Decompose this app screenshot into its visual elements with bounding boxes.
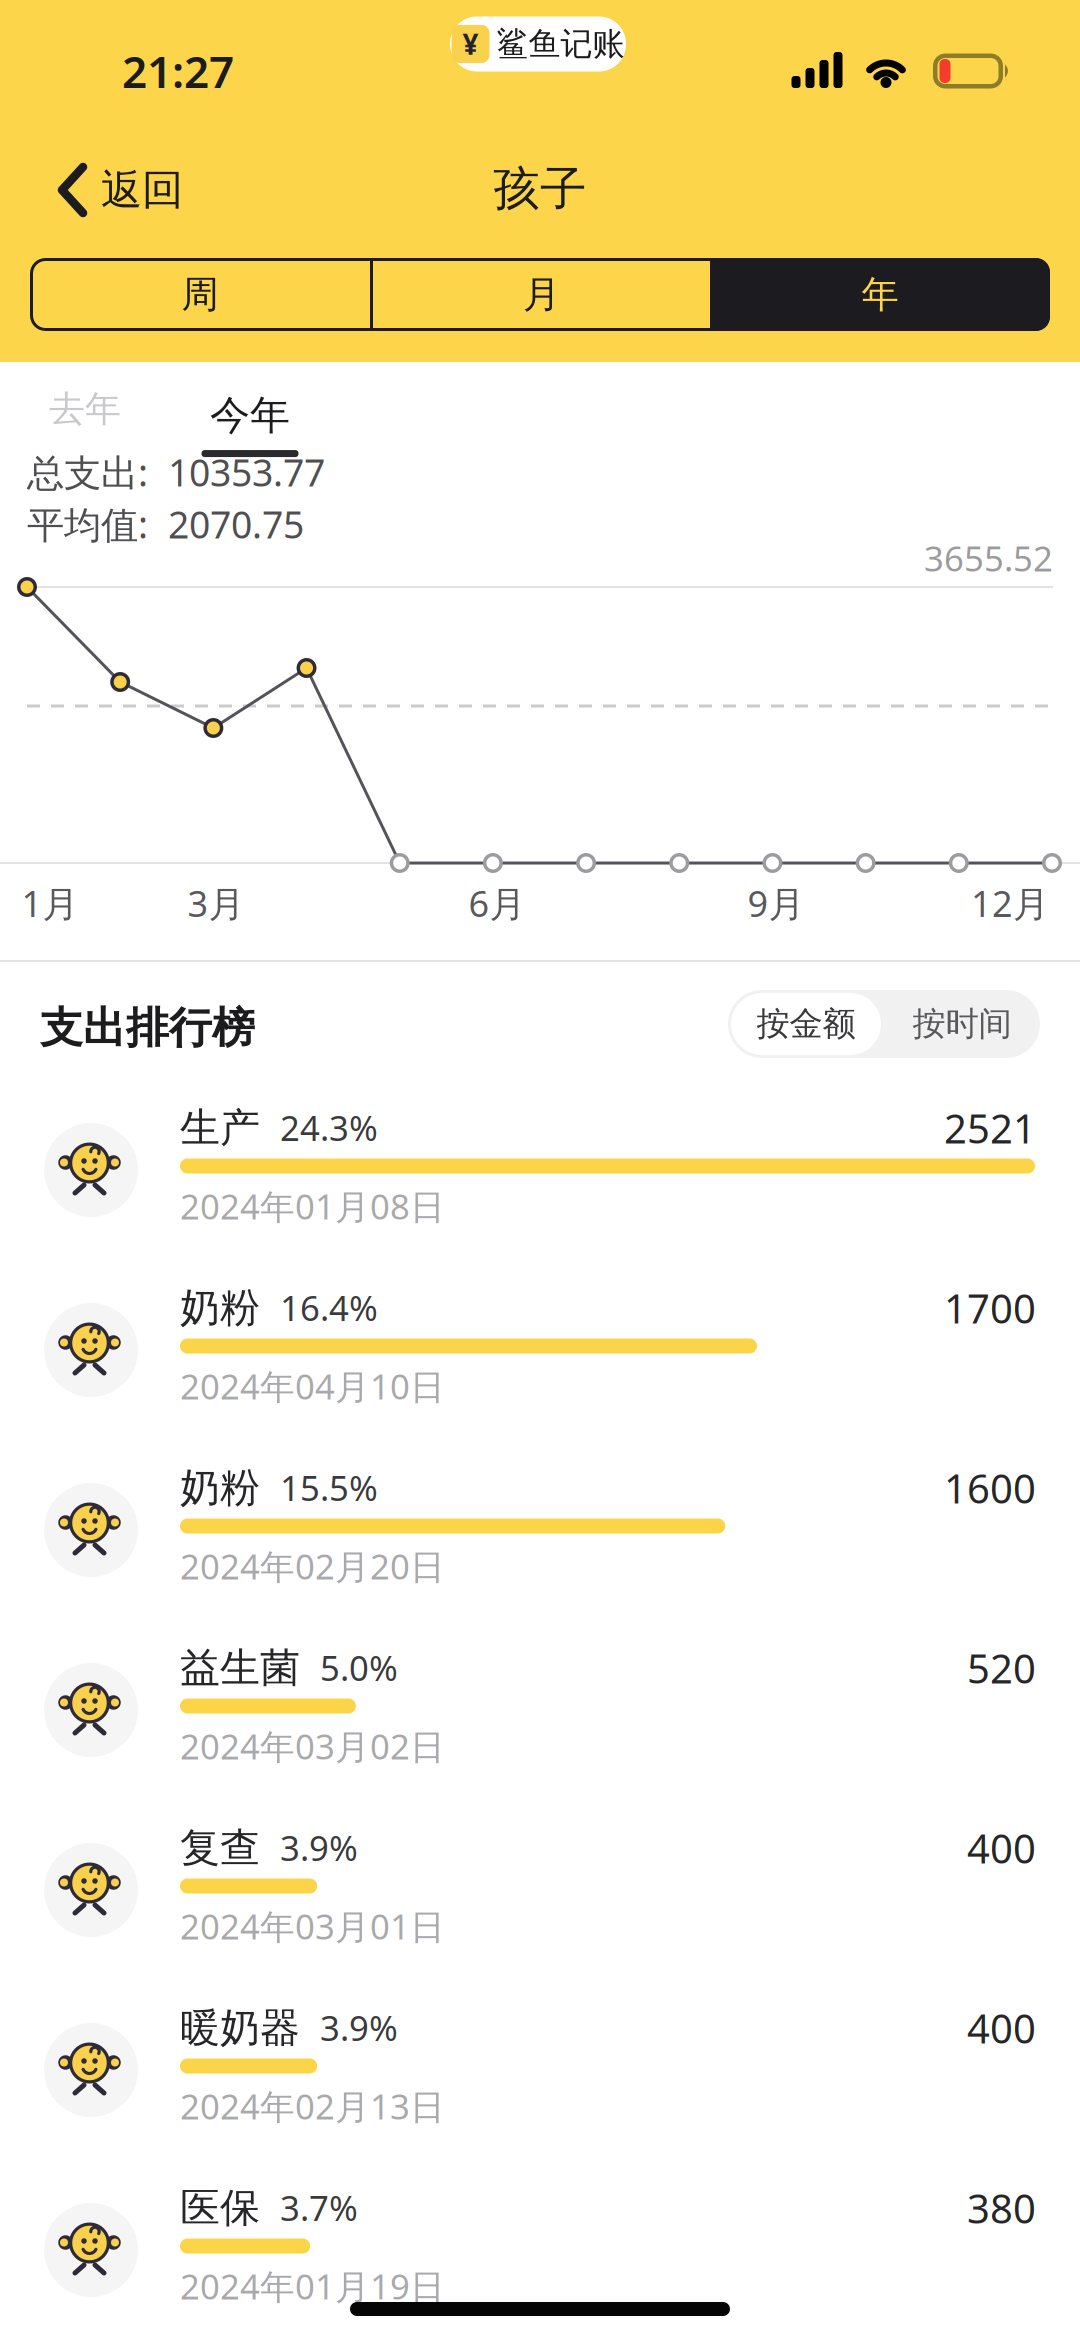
staticText: 380 — [967, 2181, 1036, 2234]
staticText: 2024年01月19日 — [180, 2263, 445, 2309]
button[interactable]: 年 — [710, 258, 1050, 331]
staticText: 支出排行榜 — [40, 1002, 255, 1054]
staticText: 复查 — [180, 1823, 260, 1872]
staticText: 400 — [967, 2001, 1036, 2054]
button[interactable]: 暖奶器 — [0, 1983, 1080, 2163]
staticText: 返回 — [101, 165, 183, 215]
staticText: 奶粉 — [180, 1463, 260, 1512]
staticText: 暖奶器 — [180, 2003, 300, 2052]
staticText: 2024年03月01日 — [180, 1903, 445, 1949]
button[interactable]: 医保 — [0, 2163, 1080, 2337]
staticText: 12月 — [971, 879, 1049, 927]
staticText: 去年 — [49, 387, 121, 431]
staticText: 1700 — [944, 1281, 1036, 1334]
staticText: 2024年04月10日 — [180, 1363, 445, 1409]
button[interactable]: 去年 — [15, 374, 155, 444]
button[interactable]: 益生菌 — [0, 1623, 1080, 1803]
staticText: 5.0% — [320, 1644, 398, 1690]
staticText: 月 — [523, 272, 560, 317]
staticText: 3.7% — [280, 2184, 358, 2230]
staticText: 年 — [861, 272, 898, 317]
staticText: 总支出: 10353.77 — [27, 447, 325, 497]
staticText: 按金额 — [756, 1003, 855, 1044]
staticText: 9月 — [747, 879, 804, 927]
staticText: 生产 — [180, 1103, 260, 1152]
staticText: 3655.52 — [924, 535, 1053, 581]
button[interactable]: 生产 — [0, 1083, 1080, 1263]
staticText: 奶粉 — [180, 1283, 260, 1332]
staticText: 医保 — [180, 2183, 260, 2232]
button[interactable]: 奶粉 — [0, 1263, 1080, 1443]
button[interactable]: 按时间 — [884, 990, 1040, 1058]
staticText: 1月 — [21, 879, 78, 927]
button[interactable]: 奶粉 — [0, 1443, 1080, 1623]
staticText: 孩子 — [493, 160, 587, 218]
staticText: 24.3% — [280, 1104, 378, 1150]
staticText: 16.4% — [280, 1284, 378, 1330]
staticText: 按时间 — [912, 1003, 1011, 1044]
button[interactable]: 今年 — [170, 380, 330, 468]
staticText: 2024年02月20日 — [180, 1543, 445, 1589]
button[interactable]: 鲨鱼记账 — [450, 16, 626, 71]
button[interactable]: 返回 — [35, 158, 205, 222]
button[interactable]: 周 — [30, 258, 370, 331]
staticText: 2024年01月08日 — [180, 1183, 445, 1229]
staticText: ¥ — [462, 25, 478, 63]
staticText: 1600 — [944, 1461, 1036, 1514]
staticText: 鲨鱼记账 — [496, 24, 624, 64]
staticText: 15.5% — [280, 1464, 378, 1510]
staticText: 2521 — [944, 1101, 1036, 1154]
staticText: 周 — [181, 272, 218, 317]
staticText: 益生菌 — [180, 1643, 300, 1692]
staticText: 今年 — [210, 391, 290, 440]
staticText: 3.9% — [320, 2004, 398, 2050]
staticText: 平均值: 2070.75 — [27, 499, 304, 549]
staticText: 6月 — [468, 879, 525, 927]
staticText: 2024年03月02日 — [180, 1723, 445, 1769]
button[interactable]: 按金额 — [728, 990, 884, 1058]
staticText: 3月 — [187, 879, 244, 927]
button[interactable]: 月 — [373, 258, 710, 331]
staticText: 520 — [967, 1641, 1036, 1694]
staticText: 400 — [967, 1821, 1036, 1874]
staticText: 3.9% — [280, 1824, 358, 1870]
staticText: 21:27 — [122, 42, 234, 100]
button[interactable]: 复查 — [0, 1803, 1080, 1983]
staticText: 2024年02月13日 — [180, 2083, 445, 2129]
